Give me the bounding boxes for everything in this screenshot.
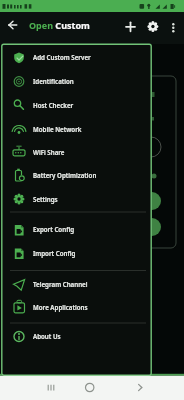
staticText: Import Config xyxy=(33,249,76,257)
staticText: Host Checker xyxy=(33,101,74,109)
staticText: About Us xyxy=(33,332,61,340)
staticText: More Applications xyxy=(33,303,88,311)
staticText: Battery Optimization xyxy=(33,171,97,179)
staticText: WiFi Share xyxy=(33,148,65,156)
staticText: Mobile Network xyxy=(33,125,82,133)
staticText: Identification xyxy=(33,77,74,85)
staticText: Open Custom xyxy=(29,19,90,31)
staticText: Export Config xyxy=(33,225,75,233)
staticText: Telegram Channel xyxy=(33,280,88,288)
staticText: Settings xyxy=(33,195,58,203)
staticText: Add Custom Server xyxy=(33,53,91,61)
